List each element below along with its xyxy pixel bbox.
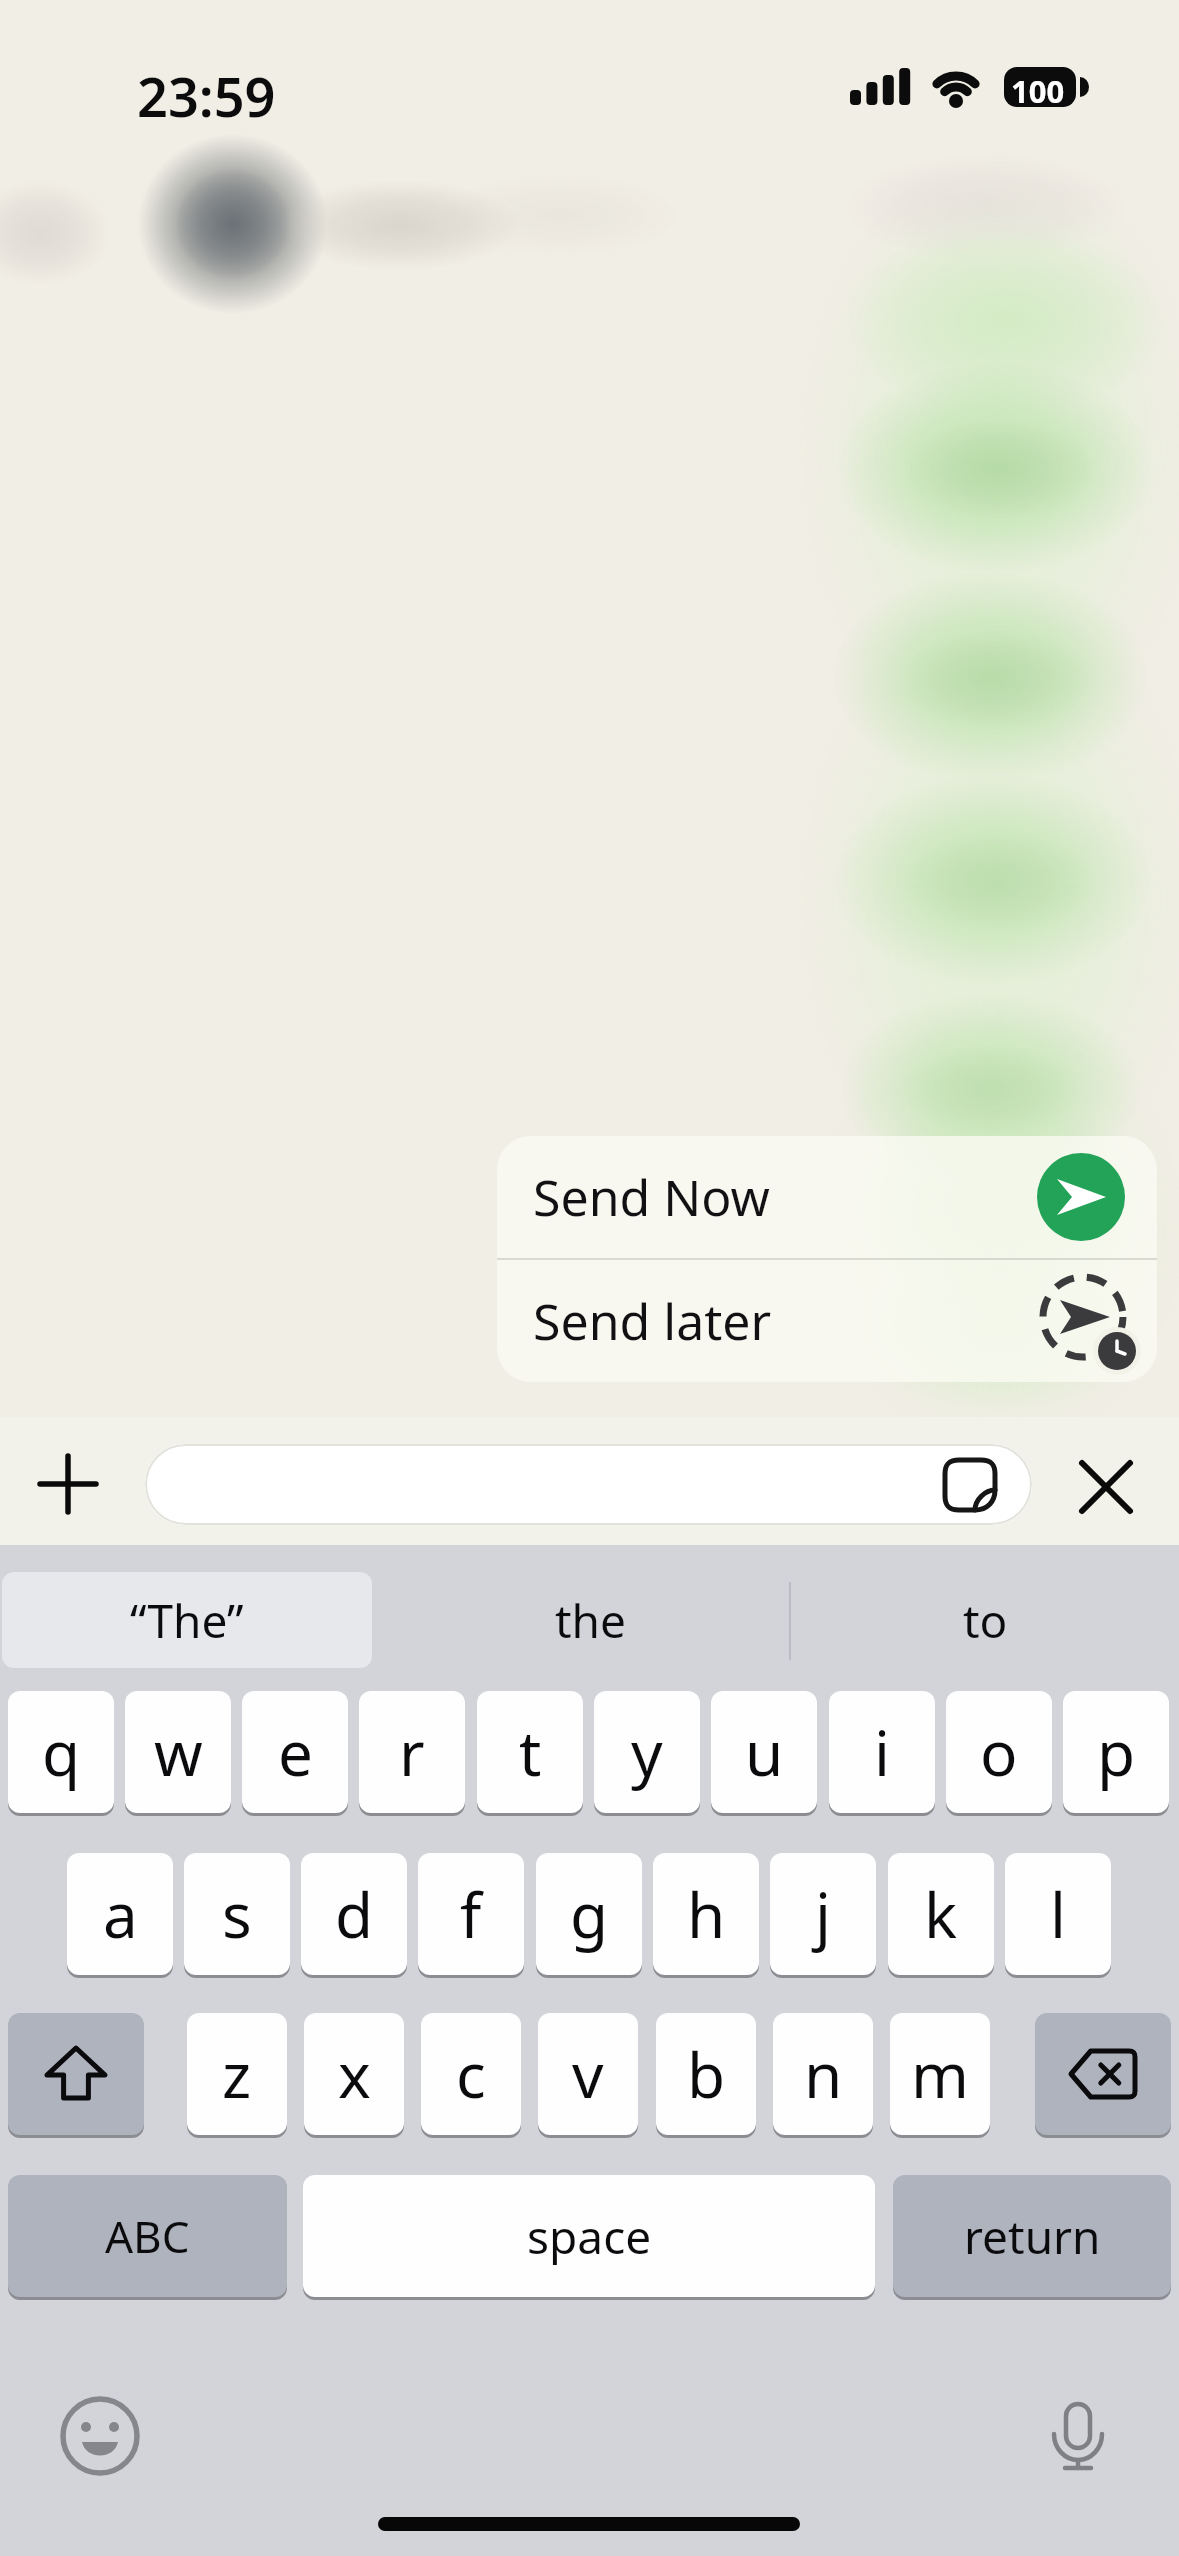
staticText: o bbox=[980, 1710, 1018, 1794]
button[interactable]: v bbox=[538, 2013, 638, 2135]
staticText: w bbox=[154, 1710, 203, 1794]
staticText: “The” bbox=[130, 1589, 244, 1652]
button[interactable]: r bbox=[359, 1691, 465, 1813]
button[interactable]: to bbox=[810, 1572, 1160, 1668]
button[interactable]: g bbox=[536, 1853, 642, 1975]
staticText: b bbox=[687, 2032, 726, 2116]
button[interactable] bbox=[62, 2398, 138, 2474]
button[interactable]: p bbox=[1063, 1691, 1169, 1813]
button[interactable]: t bbox=[477, 1691, 583, 1813]
button[interactable]: Send later bbox=[497, 1260, 1157, 1382]
staticText: m bbox=[911, 2032, 969, 2116]
button[interactable]: o bbox=[946, 1691, 1052, 1813]
staticText: i bbox=[874, 1710, 890, 1794]
staticText: u bbox=[745, 1710, 784, 1794]
staticText: 23:59 bbox=[137, 59, 276, 133]
button[interactable]: b bbox=[656, 2013, 756, 2135]
button[interactable]: c bbox=[421, 2013, 521, 2135]
button[interactable]: y bbox=[594, 1691, 700, 1813]
button[interactable]: i bbox=[829, 1691, 935, 1813]
staticText: space bbox=[527, 2205, 652, 2268]
button[interactable]: k bbox=[888, 1853, 994, 1975]
staticText: f bbox=[460, 1872, 482, 1956]
button[interactable]: m bbox=[890, 2013, 990, 2135]
button[interactable]: j bbox=[770, 1853, 876, 1975]
button[interactable] bbox=[145, 1444, 1032, 1525]
staticText: q bbox=[42, 1710, 81, 1794]
button[interactable]: l bbox=[1005, 1853, 1111, 1975]
staticText: v bbox=[572, 2032, 604, 2116]
staticText: ABC bbox=[105, 2206, 190, 2266]
staticText: k bbox=[924, 1872, 958, 1956]
staticText: x bbox=[338, 2032, 371, 2116]
button[interactable]: e bbox=[242, 1691, 348, 1813]
staticText: d bbox=[335, 1872, 374, 1956]
button[interactable] bbox=[1035, 2013, 1171, 2135]
staticText: a bbox=[103, 1872, 138, 1956]
staticText: return bbox=[964, 2205, 1101, 2268]
staticText: 100 bbox=[1011, 70, 1065, 112]
button[interactable]: “The” bbox=[2, 1572, 372, 1668]
button[interactable]: return bbox=[893, 2175, 1171, 2297]
button[interactable]: n bbox=[773, 2013, 873, 2135]
staticText: s bbox=[222, 1872, 252, 1956]
staticText: t bbox=[519, 1710, 542, 1794]
staticText: to bbox=[963, 1589, 1008, 1652]
button[interactable]: Send Now bbox=[497, 1136, 1157, 1258]
button[interactable]: u bbox=[711, 1691, 817, 1813]
button[interactable]: d bbox=[301, 1853, 407, 1975]
button[interactable]: z bbox=[187, 2013, 287, 2135]
button[interactable] bbox=[38, 1454, 98, 1514]
button[interactable] bbox=[1040, 2398, 1116, 2474]
button[interactable]: f bbox=[418, 1853, 524, 1975]
staticText: y bbox=[631, 1710, 663, 1794]
staticText: h bbox=[687, 1872, 726, 1956]
staticText: the bbox=[555, 1589, 626, 1652]
button[interactable]: w bbox=[125, 1691, 231, 1813]
staticText: Send Now bbox=[533, 1163, 770, 1231]
staticText: r bbox=[399, 1710, 425, 1794]
staticText: n bbox=[804, 2032, 843, 2116]
button[interactable]: q bbox=[8, 1691, 114, 1813]
staticText: c bbox=[456, 2032, 486, 2116]
button[interactable]: ABC bbox=[8, 2175, 287, 2297]
button[interactable] bbox=[1078, 1459, 1134, 1515]
staticText: g bbox=[570, 1872, 609, 1956]
button[interactable]: s bbox=[184, 1853, 290, 1975]
staticText: z bbox=[222, 2032, 252, 2116]
button[interactable]: the bbox=[420, 1572, 760, 1668]
button[interactable]: h bbox=[653, 1853, 759, 1975]
staticText: j bbox=[815, 1872, 831, 1956]
button[interactable]: x bbox=[304, 2013, 404, 2135]
button[interactable] bbox=[8, 2013, 144, 2135]
staticText: Send later bbox=[533, 1287, 772, 1355]
staticText: e bbox=[278, 1710, 313, 1794]
button[interactable]: space bbox=[303, 2175, 875, 2297]
staticText: p bbox=[1097, 1710, 1136, 1794]
button[interactable]: a bbox=[67, 1853, 173, 1975]
staticText: l bbox=[1050, 1872, 1066, 1956]
